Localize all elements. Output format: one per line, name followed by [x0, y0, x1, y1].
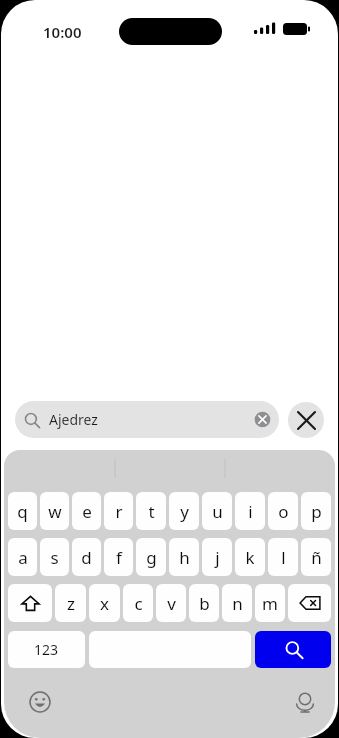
button[interactable]: ñ: [301, 538, 331, 576]
staticText: f: [116, 546, 122, 569]
staticText: k: [245, 546, 255, 569]
button[interactable]: Voice input: [291, 688, 319, 716]
button[interactable]: k: [235, 538, 265, 576]
staticText: x: [100, 592, 109, 615]
button[interactable]: Close search: [288, 402, 324, 438]
button[interactable]: Ajedrez: [15, 401, 279, 438]
button[interactable]: h: [169, 538, 199, 576]
staticText: s: [50, 546, 59, 569]
staticText: m: [262, 592, 278, 615]
button[interactable]: s: [40, 538, 69, 576]
staticText: o: [278, 500, 289, 523]
staticText: l: [281, 546, 286, 569]
button[interactable]: i: [235, 492, 265, 530]
button[interactable]: b: [189, 584, 219, 622]
staticText: p: [311, 500, 322, 523]
button[interactable]: t: [136, 492, 166, 530]
staticText: ñ: [311, 546, 322, 569]
button[interactable]: c: [123, 584, 153, 622]
button[interactable]: g: [136, 538, 166, 576]
staticText: g: [146, 546, 157, 569]
staticText: j: [215, 546, 220, 569]
staticText: i: [248, 500, 253, 523]
button[interactable]: Clear text: [254, 411, 271, 428]
button[interactable]: p: [301, 492, 331, 530]
staticText: 123: [34, 640, 59, 659]
staticText: b: [199, 592, 210, 615]
staticText: 10:00: [43, 22, 82, 42]
staticText: v: [167, 592, 176, 615]
button[interactable]: j: [202, 538, 232, 576]
button[interactable]: x: [89, 584, 120, 622]
button[interactable]: r: [104, 492, 133, 530]
button[interactable]: v: [156, 584, 186, 622]
button[interactable]: Backspace: [288, 584, 331, 622]
button[interactable]: d: [72, 538, 101, 576]
button[interactable]: y: [169, 492, 199, 530]
button[interactable]: m: [255, 584, 285, 622]
staticText: u: [212, 500, 223, 523]
button[interactable]: o: [268, 492, 298, 530]
staticText: q: [17, 500, 28, 523]
button[interactable]: Emoji: [26, 688, 54, 716]
staticText: n: [232, 592, 243, 615]
button[interactable]: z: [55, 584, 86, 622]
staticText: t: [148, 500, 155, 523]
staticText: a: [18, 546, 28, 569]
button[interactable]: q: [8, 492, 37, 530]
button[interactable]: n: [222, 584, 252, 622]
button[interactable]: l: [268, 538, 298, 576]
staticText: d: [81, 546, 92, 569]
staticText: w: [48, 500, 62, 523]
button[interactable]: Shift: [8, 584, 52, 622]
staticText: z: [67, 592, 75, 615]
button[interactable]: Search: [255, 631, 331, 668]
staticText: e: [82, 500, 92, 523]
staticText: Ajedrez: [49, 410, 254, 429]
button[interactable]: u: [202, 492, 232, 530]
staticText: c: [134, 592, 143, 615]
button[interactable]: 123: [8, 631, 85, 668]
button[interactable]: Space: [89, 631, 251, 668]
staticText: y: [180, 500, 189, 523]
button[interactable]: w: [40, 492, 69, 530]
staticText: r: [115, 500, 123, 523]
staticText: h: [179, 546, 190, 569]
button[interactable]: a: [8, 538, 37, 576]
button[interactable]: f: [104, 538, 133, 576]
button[interactable]: e: [72, 492, 101, 530]
